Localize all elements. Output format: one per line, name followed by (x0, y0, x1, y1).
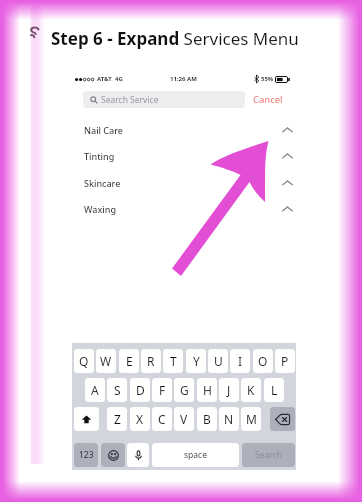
staticText: Tinting (84, 150, 115, 162)
staticText: Z (114, 411, 121, 427)
staticText: S (114, 382, 121, 398)
button[interactable]: O (253, 349, 273, 373)
staticText: R (147, 353, 155, 369)
staticText: H (203, 382, 212, 398)
button[interactable]: E (119, 349, 139, 373)
button[interactable]: D (130, 378, 150, 402)
staticText: 11:26 AM (170, 75, 197, 83)
button[interactable]: Search Service (83, 91, 245, 108)
staticText: C (158, 411, 166, 427)
button[interactable]: Cancel (253, 93, 283, 106)
staticText: P (281, 353, 289, 369)
button[interactable]: G (174, 378, 194, 402)
staticText: 4G (115, 75, 123, 83)
button[interactable]: K (241, 378, 261, 402)
staticText: U (214, 353, 223, 369)
staticText: Cancel (253, 93, 283, 106)
staticText: 123 (79, 449, 94, 461)
button[interactable]: H (197, 378, 217, 402)
staticText: X (136, 411, 144, 427)
staticText: M (246, 411, 257, 427)
button[interactable]: F (152, 378, 172, 402)
staticText: V (180, 411, 188, 427)
staticText: Step 6 - Expand Services Menu (51, 27, 299, 50)
staticText: L (271, 382, 278, 398)
button[interactable]: X (130, 407, 150, 431)
staticText: Search (255, 449, 282, 461)
staticText: E (126, 353, 133, 369)
button[interactable]: Backspace (270, 407, 295, 431)
staticText: Nail Care (84, 124, 123, 136)
staticText: T (170, 353, 177, 369)
staticText: Search Service (101, 94, 159, 106)
staticText: D (136, 382, 145, 398)
staticText: K (247, 382, 255, 398)
button[interactable]: V (174, 407, 194, 431)
button[interactable]: 123 (74, 443, 98, 467)
staticText: AT&T (97, 75, 112, 83)
staticText: space (184, 449, 207, 461)
staticText: Y (193, 353, 200, 369)
staticText: A (91, 382, 99, 398)
button[interactable]: Search (242, 443, 295, 467)
staticText: N (224, 411, 234, 427)
button[interactable]: N (219, 407, 239, 431)
button[interactable]: Dictate (127, 443, 149, 467)
staticText: G (180, 382, 189, 398)
button[interactable]: Emoji (101, 443, 125, 467)
button[interactable]: Z (107, 407, 127, 431)
button[interactable]: W (96, 349, 116, 373)
staticText: B (203, 411, 211, 427)
button[interactable]: Skincare (84, 173, 291, 193)
button[interactable]: Tinting (84, 146, 291, 166)
staticText: Q (79, 353, 89, 369)
button[interactable]: U (208, 349, 228, 373)
staticText: Waxing (84, 203, 116, 215)
button[interactable]: T (163, 349, 183, 373)
button[interactable]: space (152, 443, 239, 467)
button[interactable]: J (219, 378, 239, 402)
button[interactable]: Y (186, 349, 206, 373)
button[interactable]: B (197, 407, 217, 431)
button[interactable]: I (230, 349, 250, 373)
button[interactable]: C (152, 407, 172, 431)
button[interactable]: L (264, 378, 284, 402)
staticText: I (238, 353, 243, 369)
button[interactable]: Nail Care (84, 120, 291, 140)
staticText: O (258, 353, 268, 369)
staticText: J (227, 382, 231, 398)
staticText: W (100, 353, 112, 369)
button[interactable]: A (85, 378, 105, 402)
staticText: Skincare (84, 177, 121, 189)
button[interactable]: Shift (74, 407, 99, 431)
button[interactable]: R (141, 349, 161, 373)
button[interactable]: Waxing (84, 199, 291, 219)
button[interactable]: P (275, 349, 295, 373)
button[interactable]: S (107, 378, 127, 402)
button[interactable]: M (241, 407, 261, 431)
button[interactable]: Q (74, 349, 94, 373)
staticText: 55% (261, 75, 274, 83)
staticText: F (159, 382, 166, 398)
